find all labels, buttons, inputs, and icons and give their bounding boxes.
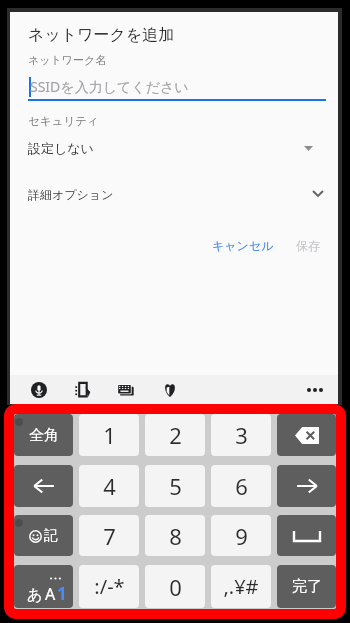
button[interactable]: 2 — [145, 414, 205, 456]
other: Backspace — [295, 427, 319, 444]
button[interactable]: 9 — [211, 515, 271, 556]
button[interactable]: Backspace — [277, 414, 336, 456]
button[interactable]: ,.¥# — [211, 565, 271, 608]
staticText: 2 — [169, 420, 182, 450]
staticText: セキュリティ — [28, 114, 99, 128]
button[interactable]: 0 — [145, 565, 205, 608]
button[interactable]: Clipboard — [156, 375, 184, 404]
button[interactable]: 全角 — [14, 414, 73, 456]
other: Move cursor left — [33, 478, 55, 494]
button[interactable]: 保存 — [287, 231, 329, 259]
button[interactable]: 詳細オプション — [20, 182, 340, 208]
button[interactable]: 8 — [145, 515, 205, 556]
staticText: 9 — [235, 521, 248, 551]
button[interactable]: Space — [277, 515, 336, 556]
button[interactable]: 1 — [79, 414, 139, 456]
staticText: 設定しない — [28, 140, 94, 156]
button[interactable]: あ — [14, 565, 73, 608]
staticText: 保存 — [296, 238, 320, 253]
staticText: 記 — [44, 527, 58, 545]
button[interactable]: 5 — [145, 465, 205, 507]
button[interactable]: SSIDを入力してください — [28, 74, 326, 101]
button[interactable]: 3 — [211, 414, 271, 456]
staticText: A — [45, 583, 56, 605]
staticText: 全角 — [29, 426, 59, 445]
staticText: 1 — [103, 420, 116, 450]
button[interactable]: :/-* — [79, 565, 139, 608]
staticText: 3 — [235, 420, 248, 450]
staticText: あ — [27, 586, 43, 605]
staticText: SSIDを入力してください — [30, 77, 189, 96]
staticText: 8 — [169, 521, 182, 551]
staticText: ネットワークを追加 — [28, 25, 175, 45]
button[interactable]: Move cursor left — [14, 465, 73, 507]
staticText: 7 — [103, 521, 116, 551]
staticText: 完了 — [292, 577, 322, 596]
button[interactable]: キャンセル — [203, 231, 283, 259]
staticText: 4 — [103, 471, 116, 501]
staticText: キャンセル — [212, 238, 274, 253]
button[interactable]: 7 — [79, 515, 139, 556]
button[interactable]: 4 — [79, 465, 139, 507]
button[interactable]: 記 — [14, 515, 73, 556]
staticText: 5 — [169, 471, 182, 501]
button[interactable]: 完了 — [277, 565, 336, 608]
button[interactable]: Handwriting input — [68, 375, 96, 404]
other: Move cursor right — [296, 478, 318, 494]
staticText: :/-* — [94, 573, 125, 600]
staticText: ネットワーク名 — [28, 53, 107, 67]
staticText: 詳細オプション — [28, 187, 114, 202]
staticText: 1 — [57, 582, 67, 605]
button[interactable]: 設定しない — [20, 136, 330, 162]
staticText: 0 — [169, 572, 182, 602]
staticText: ,.¥# — [223, 573, 259, 600]
button[interactable]: Move cursor right — [277, 465, 336, 507]
button[interactable]: 6 — [211, 465, 271, 507]
button[interactable]: Voice input — [25, 375, 53, 404]
staticText: 6 — [235, 471, 248, 501]
button[interactable]: More options — [301, 375, 329, 404]
other: Space — [294, 531, 320, 541]
button[interactable]: Keyboard layout — [111, 375, 139, 404]
